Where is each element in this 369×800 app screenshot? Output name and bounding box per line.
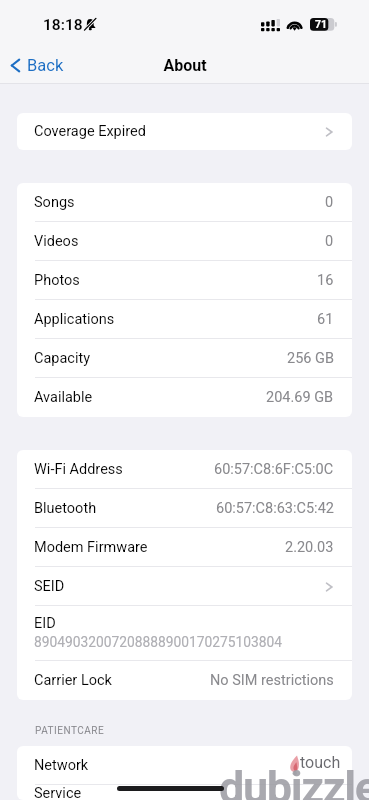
button[interactable]: Wi-Fi Address xyxy=(17,450,352,489)
button[interactable]: EID xyxy=(17,606,352,661)
staticText: Bluetooth xyxy=(34,500,97,517)
button[interactable]: Coverage Expired xyxy=(17,113,352,150)
staticText: EID xyxy=(34,615,56,632)
staticText: Wi-Fi Address xyxy=(34,461,123,478)
button[interactable]: Back xyxy=(0,52,74,79)
staticText: 89049032007208888900170275103804 xyxy=(34,634,283,650)
staticText: 60:57:C8:63:C5:42 xyxy=(216,500,334,517)
staticText: 2.20.03 xyxy=(285,539,334,556)
staticText: Carrier Lock xyxy=(34,672,112,689)
button[interactable]: Network xyxy=(17,746,352,785)
button[interactable]: Videos xyxy=(17,222,352,261)
button[interactable]: Songs xyxy=(17,183,352,222)
staticText: SEID xyxy=(34,578,65,595)
button[interactable]: Available xyxy=(17,378,352,417)
staticText: Coverage Expired xyxy=(34,123,146,140)
button[interactable]: Capacity xyxy=(17,339,352,378)
staticText: Available xyxy=(34,389,93,406)
staticText: 0 xyxy=(325,233,334,250)
staticText: Photos xyxy=(34,272,80,289)
staticText: No SIM restrictions xyxy=(210,672,334,689)
button[interactable]: Applications xyxy=(17,300,352,339)
staticText: Service xyxy=(34,785,82,800)
staticText: Videos xyxy=(34,233,79,250)
staticText: 204.69 GB xyxy=(266,389,334,406)
staticText: About xyxy=(163,56,207,75)
staticText: touch xyxy=(300,753,341,772)
button[interactable]: SEID xyxy=(17,567,352,606)
staticText: 18:18 xyxy=(43,16,83,34)
staticText: Modem Firmware xyxy=(34,539,148,556)
button[interactable]: Service xyxy=(17,785,352,800)
staticText: PATIENTCARE xyxy=(35,725,105,737)
button[interactable]: Bluetooth xyxy=(17,489,352,528)
staticText: 71 xyxy=(315,18,328,30)
staticText: Capacity xyxy=(34,350,91,367)
staticText: Songs xyxy=(34,194,75,211)
button[interactable]: Photos xyxy=(17,261,352,300)
staticText: Applications xyxy=(34,311,115,328)
staticText: 0 xyxy=(325,194,334,211)
button[interactable]: Modem Firmware xyxy=(17,528,352,567)
staticText: 60:57:C8:6F:C5:0C xyxy=(214,461,334,478)
staticText: Network xyxy=(34,757,89,774)
staticText: 61 xyxy=(317,311,334,328)
staticText: 16 xyxy=(317,272,334,289)
button[interactable]: Carrier Lock xyxy=(17,661,352,700)
staticText: Back xyxy=(27,56,64,75)
staticText: dubizzle xyxy=(219,761,369,800)
staticText: 256 GB xyxy=(287,350,334,367)
